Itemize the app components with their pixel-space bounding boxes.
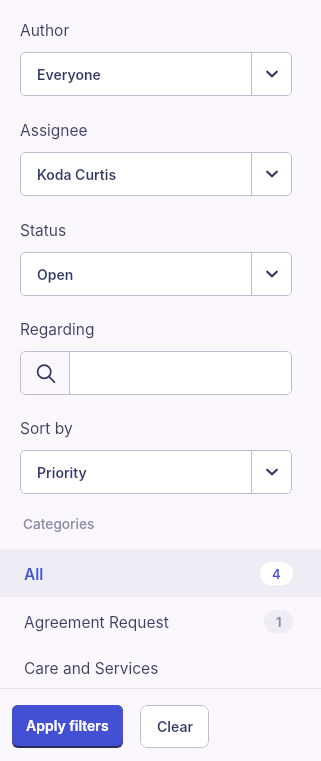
button[interactable]: Apply filters bbox=[12, 705, 123, 748]
staticText: Care and Services bbox=[24, 659, 159, 678]
staticText: All bbox=[24, 565, 44, 584]
button[interactable]: Agreement Request bbox=[0, 597, 321, 645]
staticText: Status bbox=[20, 221, 67, 240]
staticText: Clear bbox=[157, 718, 193, 735]
button[interactable]: Koda Curtis bbox=[20, 152, 292, 196]
button[interactable]: Open bbox=[20, 252, 292, 296]
staticText: 1 bbox=[276, 614, 282, 630]
staticText: Sort by bbox=[20, 419, 73, 438]
staticText: Author bbox=[20, 21, 70, 40]
button[interactable]: Care and Services bbox=[0, 645, 321, 688]
staticText: Priority bbox=[37, 464, 87, 481]
staticText: Apply filters bbox=[26, 717, 109, 734]
staticText: Categories bbox=[23, 516, 95, 533]
staticText: 4 bbox=[272, 566, 281, 582]
button[interactable]: Clear bbox=[140, 705, 209, 748]
staticText: Koda Curtis bbox=[37, 166, 117, 183]
button[interactable]: All bbox=[0, 549, 321, 597]
staticText: Open bbox=[37, 266, 74, 283]
button[interactable]: Everyone bbox=[20, 52, 292, 96]
staticText: Agreement Request bbox=[24, 613, 169, 632]
button[interactable]: Priority bbox=[20, 450, 292, 494]
button[interactable]: Search bbox=[20, 351, 69, 395]
button[interactable] bbox=[70, 351, 292, 395]
staticText: Everyone bbox=[37, 66, 101, 83]
staticText: Assignee bbox=[20, 121, 88, 140]
staticText: Regarding bbox=[20, 320, 95, 339]
